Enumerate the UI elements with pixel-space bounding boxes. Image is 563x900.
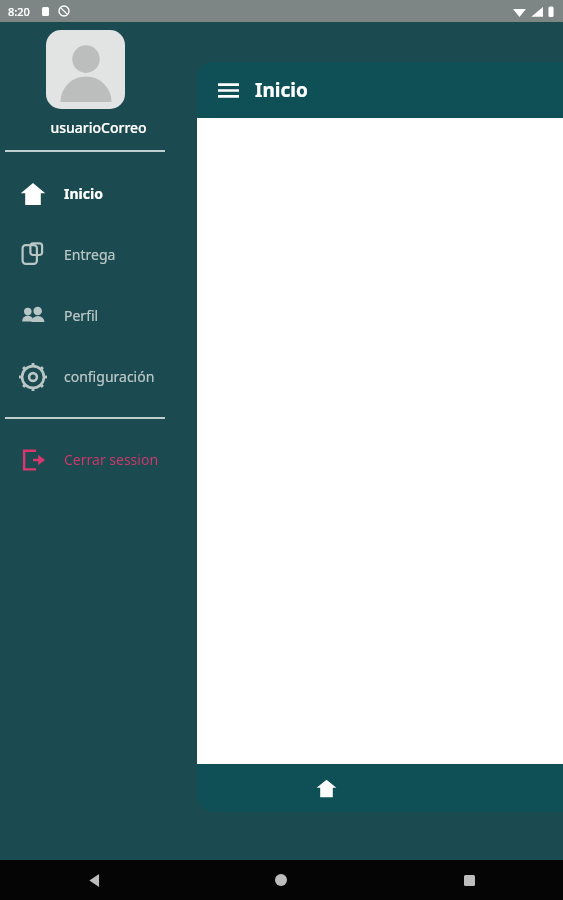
button[interactable]: Home xyxy=(303,765,349,811)
button[interactable]: Back xyxy=(74,860,114,900)
button[interactable]: Open navigation menu xyxy=(211,73,245,107)
staticText: Entrega xyxy=(64,245,116,264)
staticText: configuración xyxy=(64,367,155,386)
staticText: Perfil xyxy=(64,306,99,325)
staticText: 8:20 xyxy=(8,4,30,19)
staticText: usuarioCorreo xyxy=(50,118,147,137)
button[interactable]: Home xyxy=(261,860,301,900)
button[interactable]: configuración xyxy=(0,346,197,407)
button[interactable]: Recent apps xyxy=(449,860,489,900)
button[interactable]: Inicio xyxy=(0,163,197,224)
button[interactable]: Entrega xyxy=(0,224,197,285)
button[interactable]: Cerrar session xyxy=(0,429,197,490)
staticText: Inicio xyxy=(64,184,103,203)
staticText: Cerrar session xyxy=(64,450,159,469)
button[interactable]: Perfil xyxy=(0,285,197,346)
staticText: Inicio xyxy=(255,77,308,103)
